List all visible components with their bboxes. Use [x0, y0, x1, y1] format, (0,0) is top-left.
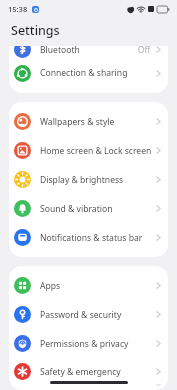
staticText: Apps [40, 280, 156, 292]
button[interactable]: Connection & sharing [9, 64, 168, 82]
button[interactable]: Wallpapers & style [9, 107, 168, 136]
staticText: Connection & sharing [40, 67, 156, 79]
staticText: Notifications & status bar [40, 232, 156, 244]
button[interactable]: Notifications & status bar [9, 223, 168, 252]
button[interactable]: Bluetooth [9, 46, 168, 64]
staticText: Bluetooth [40, 46, 138, 56]
staticText: Permissions & privacy [40, 338, 156, 350]
button[interactable]: Password & security [9, 300, 168, 329]
button[interactable]: Home screen & Lock screen [9, 136, 168, 165]
staticText: Wallpapers & style [40, 116, 156, 128]
staticText: Display & brightness [40, 174, 156, 186]
button[interactable]: Safety & emergency [9, 358, 168, 385]
button[interactable]: Sound & vibration [9, 194, 168, 223]
staticText: Settings [11, 22, 60, 39]
staticText: Sound & vibration [40, 203, 156, 215]
button[interactable]: Permissions & privacy [9, 329, 168, 358]
button[interactable]: Display & brightness [9, 165, 168, 194]
staticText: Password & security [40, 309, 156, 321]
staticText: Home screen & Lock screen [40, 145, 156, 157]
staticText: Off [138, 46, 151, 55]
staticText: Safety & emergency [40, 366, 156, 378]
button[interactable]: Apps [9, 271, 168, 300]
staticText: 15:38 [8, 4, 28, 14]
